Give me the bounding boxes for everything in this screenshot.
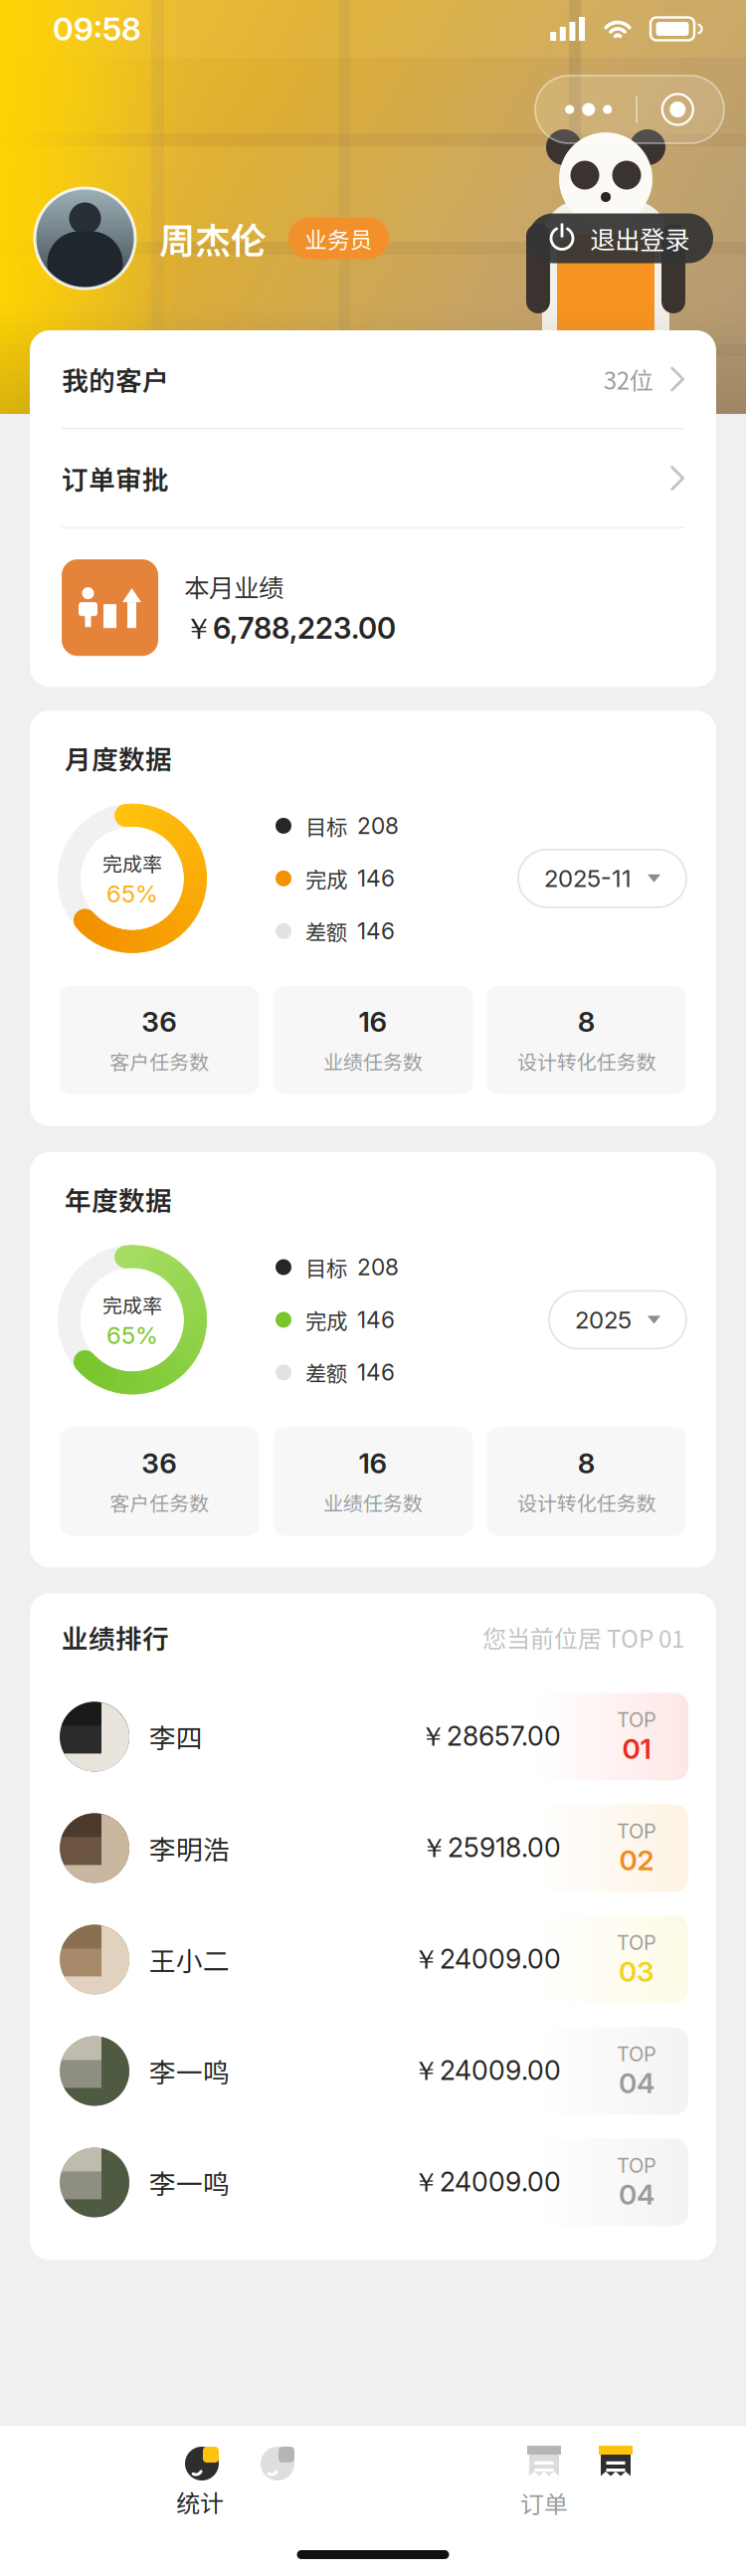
staticText: ￥24009.00 (413, 2054, 561, 2088)
staticText: 8 (578, 1446, 596, 1480)
staticText: 目标 (305, 1252, 347, 1283)
staticText: 设计转化任务数 (517, 1047, 656, 1075)
staticText: 208 (357, 812, 399, 839)
staticText: 设计转化任务数 (517, 1488, 656, 1517)
staticText: 本月业绩 (184, 568, 283, 604)
staticText: TOP (617, 1819, 656, 1843)
staticText: ￥6,788,223.00 (184, 610, 396, 647)
staticText: 完成 (305, 863, 347, 894)
staticText: ￥25918.00 (421, 1831, 561, 1865)
staticText: 04 (619, 2178, 654, 2211)
button[interactable]: 2025 (549, 1291, 686, 1349)
button[interactable]: 统计 (185, 2427, 294, 2519)
staticText: 客户任务数 (110, 1047, 209, 1075)
staticText: 16 (359, 1446, 387, 1480)
staticText: 差额 (305, 1357, 347, 1388)
staticText: TOP (617, 2042, 656, 2066)
staticText: 2025-11 (544, 864, 632, 893)
staticText: 目标 (305, 810, 347, 841)
staticText: 146 (357, 1306, 395, 1333)
staticText: ￥24009.00 (413, 2166, 561, 2199)
button[interactable]: 订单 (527, 2426, 633, 2520)
staticText: 李一鸣 (149, 2163, 230, 2202)
staticText: 146 (357, 917, 395, 945)
staticText: 36 (142, 1005, 177, 1039)
staticText: 146 (357, 865, 395, 892)
staticText: 208 (357, 1253, 399, 1281)
staticText: 03 (619, 1955, 654, 1988)
staticText: 业绩任务数 (323, 1047, 423, 1075)
button[interactable]: 2025-11 (518, 850, 686, 907)
staticText: 李一鸣 (149, 2052, 230, 2090)
staticText: 09:58 (53, 10, 141, 48)
staticText: 02 (619, 1843, 654, 1877)
staticText: 月度数据 (65, 738, 172, 777)
staticText: TOP (617, 1931, 656, 1955)
staticText: ￥24009.00 (413, 1943, 561, 1976)
staticText: 我的客户 (62, 360, 169, 398)
staticText: 65% (106, 1321, 158, 1350)
staticText: 统计 (176, 2484, 224, 2519)
staticText: 订单 (520, 2485, 568, 2520)
button[interactable]: 订单审批 (30, 429, 716, 527)
staticText: 32位 (603, 362, 653, 396)
button[interactable]: 我的客户 (30, 330, 716, 428)
staticText: 订单审批 (62, 459, 169, 497)
staticText: 业绩任务数 (323, 1488, 423, 1517)
staticText: 36 (142, 1446, 177, 1480)
staticText: 2025 (575, 1305, 632, 1334)
staticText: 李四 (149, 1717, 203, 1756)
staticText: 您当前位居 TOP 01 (482, 1620, 684, 1655)
staticText: 王小二 (149, 1940, 230, 1979)
staticText: 16 (359, 1005, 387, 1039)
staticText: 业绩排行 (62, 1618, 169, 1656)
staticText: 差额 (305, 916, 347, 946)
staticText: 完成 (305, 1304, 347, 1335)
staticText: 退出登录 (590, 220, 689, 257)
staticText: 完成率 (102, 849, 162, 877)
staticText: 完成率 (102, 1290, 162, 1319)
staticText: ￥28657.00 (420, 1720, 561, 1754)
staticText: 业务员 (304, 222, 373, 255)
staticText: 65% (106, 879, 158, 908)
staticText: TOP (617, 2154, 656, 2178)
staticText: 8 (578, 1005, 596, 1039)
button[interactable]: 退出登录 (528, 213, 713, 263)
staticText: 客户任务数 (110, 1488, 209, 1517)
staticText: TOP (617, 1708, 656, 1732)
staticText: 李明浩 (149, 1829, 230, 1867)
staticText: 年度数据 (65, 1180, 172, 1218)
staticText: 04 (619, 2066, 654, 2100)
staticText: 周杰伦 (159, 212, 267, 264)
staticText: 01 (622, 1732, 651, 1766)
staticText: 146 (357, 1359, 395, 1386)
